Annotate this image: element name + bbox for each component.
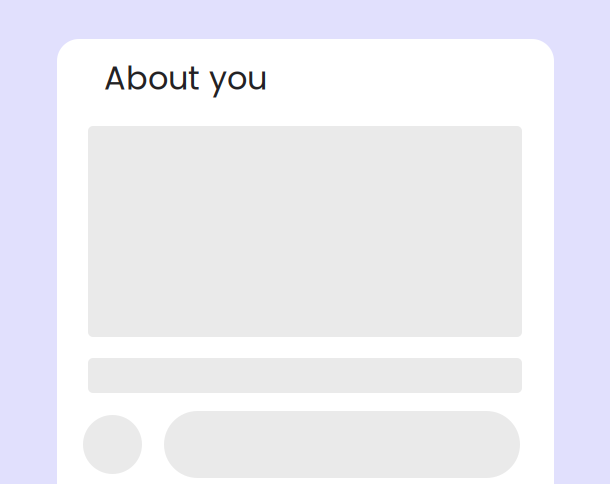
button[interactable]: Continue — [164, 411, 520, 478]
staticText: About you — [104, 56, 267, 101]
button[interactable]: Profile photo — [83, 415, 142, 474]
